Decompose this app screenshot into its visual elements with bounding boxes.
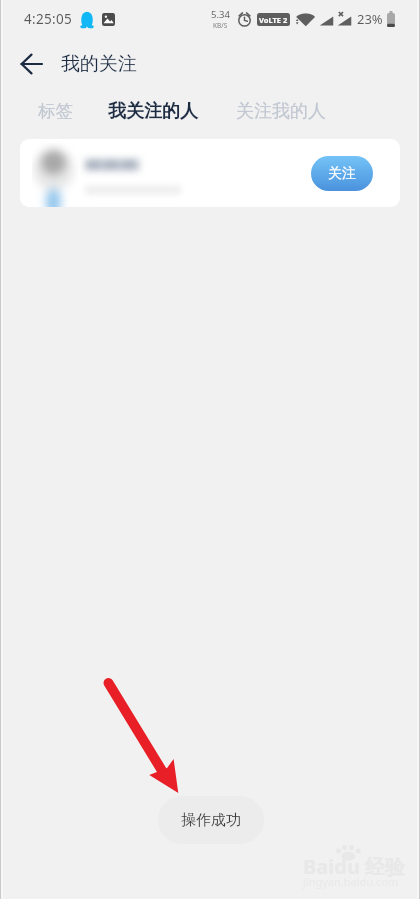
staticText: KB/S — [213, 21, 228, 30]
button[interactable]: 关注我的人 — [218, 92, 344, 131]
staticText: Baidu 经验 — [303, 853, 406, 880]
staticText: 关注我的人 — [236, 100, 326, 123]
button[interactable]: 关注 — [311, 156, 373, 191]
staticText: 操作成功 — [181, 811, 241, 830]
button[interactable]: 我关注的人 — [90, 92, 216, 131]
staticText: 4:25:05 — [24, 10, 72, 28]
button[interactable]: Back — [7, 40, 55, 88]
staticText: 关注 — [328, 165, 356, 183]
staticText: VoLTE 2 — [259, 15, 288, 25]
button[interactable]: 标签 — [20, 92, 91, 130]
button[interactable]: 关注 — [20, 139, 400, 207]
staticText: 5.34 — [211, 8, 230, 21]
staticText: 23% — [357, 10, 383, 28]
staticText: 我关注的人 — [108, 100, 198, 123]
staticText: 我的关注 — [61, 52, 137, 76]
staticText: 标签 — [38, 100, 73, 122]
